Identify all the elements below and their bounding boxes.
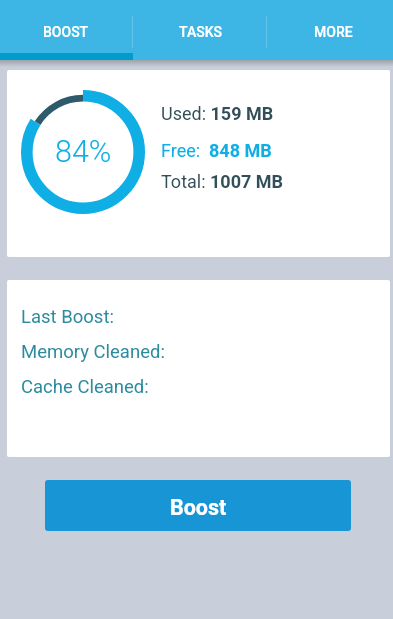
staticText: Boost (170, 495, 227, 520)
staticText: BOOST (43, 24, 89, 40)
staticText: Memory Cleaned: (21, 341, 165, 363)
button[interactable]: TASKS (133, 0, 267, 60)
staticText: Free: 848 MB (161, 140, 272, 161)
staticText: MORE (314, 24, 353, 40)
button[interactable]: MORE (267, 0, 393, 60)
button[interactable]: BOOST (0, 0, 133, 60)
staticText: Used: 159 MB (161, 103, 274, 124)
staticText: TASKS (179, 24, 222, 40)
staticText: Total: 1007 MB (161, 171, 284, 192)
staticText: Last Boost: (21, 306, 114, 328)
staticText: 84% (55, 134, 112, 170)
button[interactable]: Boost (45, 480, 351, 531)
staticText: Cache Cleaned: (21, 376, 149, 398)
